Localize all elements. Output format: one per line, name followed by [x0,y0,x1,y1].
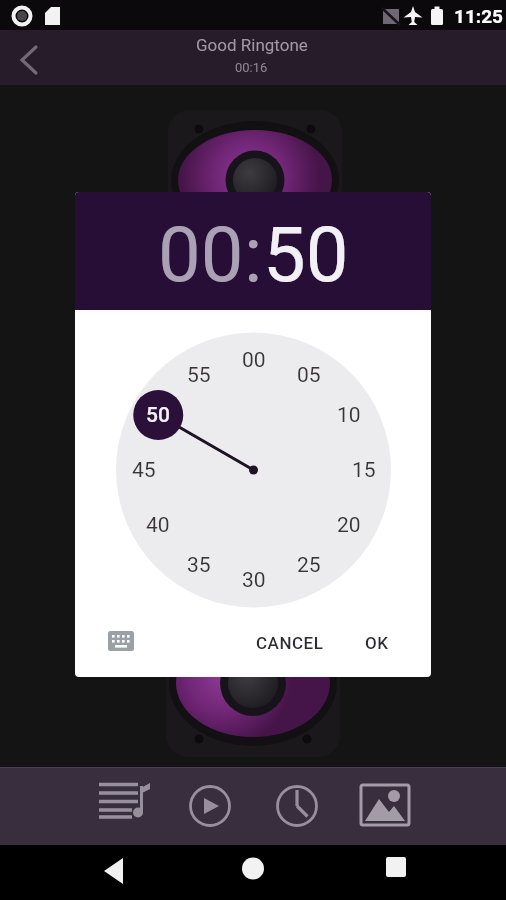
staticText: 00 [158,210,244,299]
button[interactable]: 00 [232,347,276,373]
staticText: 40 [146,513,170,538]
button[interactable] [184,780,236,832]
staticText: 45 [132,458,156,483]
button[interactable]: 10 [327,402,371,428]
staticText: 30 [242,568,266,593]
button[interactable] [271,780,323,832]
staticText: 00 [242,348,266,373]
button[interactable]: 25 [287,552,331,578]
button[interactable]: OK [347,622,407,664]
button[interactable] [95,857,135,885]
button[interactable] [97,780,149,832]
button[interactable]: 05 [287,362,331,388]
button[interactable]: CANCEL [242,622,338,664]
staticText: : [244,210,263,299]
staticText: 55 [187,363,211,388]
staticText: 11:25 [454,5,503,27]
staticText: 50 [263,210,349,299]
button[interactable] [376,857,416,885]
button[interactable] [106,626,136,656]
staticText: 15 [352,458,376,483]
button[interactable] [359,780,411,832]
button[interactable] [8,43,48,79]
button[interactable]: 15 [342,457,386,483]
staticText: 20 [337,513,361,538]
button[interactable]: 45 [122,457,166,483]
button[interactable] [233,857,273,885]
button[interactable]: 50 [136,402,180,428]
button[interactable]: 35 [177,552,221,578]
staticText: 10 [337,403,361,428]
staticText: 25 [297,553,321,578]
staticText: Good Ringtone [196,35,308,55]
button[interactable]: 20 [327,512,371,538]
staticText: CANCEL [256,633,324,653]
staticText: OK [365,633,389,653]
button[interactable]: 40 [136,512,180,538]
staticText: 50 [146,403,170,428]
staticText: 05 [297,363,321,388]
button[interactable]: 55 [177,362,221,388]
button[interactable]: 30 [232,567,276,593]
staticText: 35 [187,553,211,578]
staticText: 00:16 [235,60,268,75]
